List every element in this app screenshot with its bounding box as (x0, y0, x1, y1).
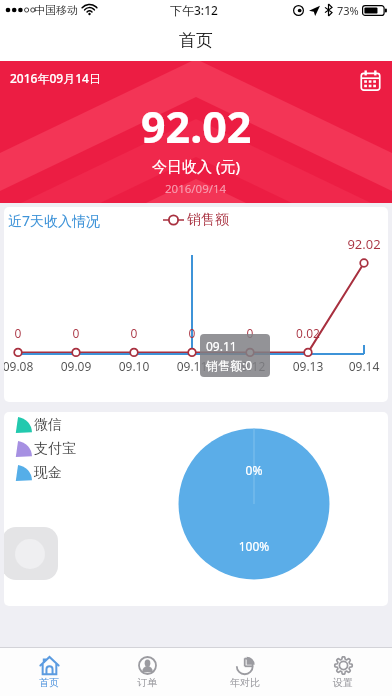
staticText: 92.02 (141, 97, 252, 156)
staticText: 92.02 (338, 235, 388, 253)
staticText: 100% (234, 538, 274, 554)
staticText: 0 (230, 325, 270, 341)
button[interactable]: 微信 (14, 416, 62, 434)
staticText: 09.08 (4, 358, 43, 374)
staticText: 09.13 (283, 358, 333, 374)
staticText: 0 (114, 325, 154, 341)
staticText: 09.12 (225, 358, 275, 374)
staticText: 09.14 (339, 358, 388, 374)
staticText: 0 (56, 325, 96, 341)
staticText: 09.11 (206, 338, 237, 354)
button[interactable]: 日历 (358, 68, 382, 92)
staticText: 微信 (34, 416, 62, 434)
staticText: 09.10 (109, 358, 159, 374)
button[interactable]: 加载中 (4, 527, 58, 580)
button[interactable]: 设置 (294, 648, 392, 696)
staticText: 2016年09月14日 (10, 70, 101, 86)
staticText: 09.11 (167, 358, 217, 374)
staticText: 中国移动 (34, 3, 78, 17)
staticText: 0.02 (288, 325, 328, 341)
staticText: 销售额 (187, 211, 229, 229)
staticText: 支付宝 (34, 440, 76, 458)
staticText: 今日收入 (元) (152, 156, 240, 176)
button[interactable]: 订单 (98, 648, 196, 696)
button[interactable]: 销售额 (163, 211, 229, 229)
staticText: 0% (234, 462, 274, 478)
button[interactable]: 支付宝 (14, 440, 76, 458)
staticText: 0 (4, 325, 38, 341)
staticText: 销售额:0 (206, 357, 253, 373)
staticText: 设置 (333, 676, 353, 689)
staticText: 73% (337, 3, 359, 18)
staticText: 下午3:12 (170, 2, 218, 18)
button[interactable]: 现金 (14, 464, 62, 482)
staticText: 现金 (34, 464, 62, 482)
button[interactable]: 首页 (0, 648, 98, 696)
staticText: 订单 (137, 676, 157, 689)
staticText: 年对比 (230, 676, 260, 689)
staticText: 09.09 (51, 358, 101, 374)
staticText: 首页 (179, 30, 213, 51)
staticText: 0 (172, 325, 212, 341)
button[interactable]: 年对比 (196, 648, 294, 696)
staticText: 2016/09/14 (165, 181, 227, 197)
staticText: 首页 (39, 676, 59, 689)
staticText: 近7天收入情况 (8, 211, 101, 230)
